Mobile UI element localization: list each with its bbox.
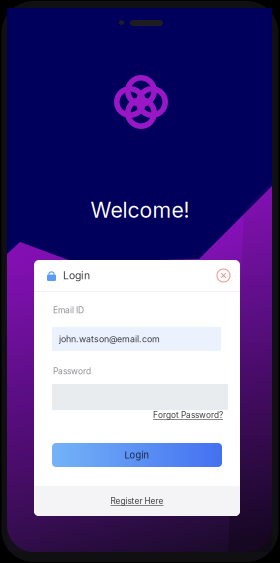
staticText: john.watson@email.com [59, 334, 160, 344]
staticText: Login [124, 449, 149, 461]
staticText: Password [53, 366, 91, 376]
staticText: Welcome! [90, 197, 189, 223]
staticText: Register Here [110, 496, 163, 506]
staticText: Login [63, 269, 90, 282]
button[interactable]: Forgot Password? [153, 410, 223, 420]
staticText: Forgot Password? [153, 410, 223, 420]
button[interactable]: Close [216, 268, 231, 283]
button[interactable]: Login [52, 443, 222, 467]
button[interactable]: Register Here [34, 486, 240, 516]
staticText: Email ID [53, 305, 84, 315]
button[interactable]: Login [34, 260, 124, 291]
